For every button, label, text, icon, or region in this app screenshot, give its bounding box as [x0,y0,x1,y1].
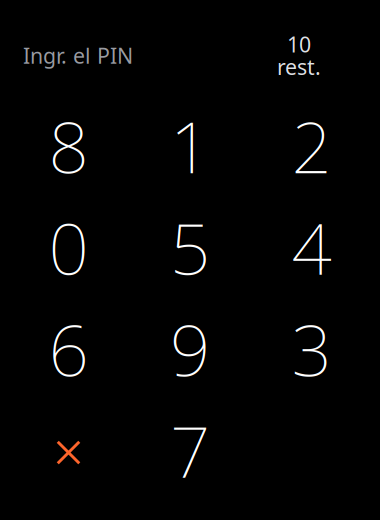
staticText: 3 [291,301,331,397]
button[interactable]: 2 [251,95,372,196]
button[interactable]: 3 [251,298,372,399]
button[interactable]: 6 [8,298,129,399]
staticText: 4 [291,199,331,295]
staticText: rest. [277,52,321,81]
staticText: 10 [287,30,311,58]
staticText: 5 [170,199,210,295]
button[interactable]: 0 [8,196,129,298]
button[interactable]: 4 [251,196,372,298]
button[interactable]: 1 [129,95,251,196]
staticText: 8 [48,98,88,194]
button[interactable]: 8 [8,95,129,196]
staticText: 0 [48,199,88,295]
staticText: 9 [170,301,210,397]
button[interactable]: 7 [129,399,251,501]
button[interactable]: Delete [8,399,129,501]
staticText: Ingr. el PIN [23,41,133,70]
button[interactable]: 9 [129,298,251,399]
staticText: 2 [291,98,331,194]
staticText: 7 [170,402,210,498]
staticText: 1 [170,98,210,194]
button[interactable]: 5 [129,196,251,298]
staticText: 6 [48,301,88,397]
